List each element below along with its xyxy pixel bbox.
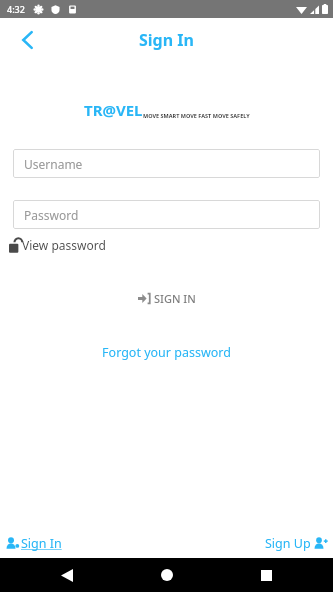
staticText: View password (22, 237, 106, 253)
button[interactable]: Forgot your password (94, 340, 239, 365)
button[interactable]: Recents (251, 560, 281, 590)
staticText: Password (24, 207, 79, 223)
button[interactable]: SIGN IN (128, 287, 206, 310)
button[interactable]: Password (13, 200, 320, 229)
staticText: TR@VEL (84, 100, 143, 120)
button[interactable]: Sign Up (263, 532, 330, 555)
staticText: SIGN IN (154, 291, 196, 306)
button[interactable]: Sign In (3, 532, 64, 555)
button[interactable]: Back (10, 23, 44, 57)
staticText: Sign Up (265, 535, 311, 552)
staticText: Forgot your password (102, 344, 231, 361)
staticText: 4:32 (7, 3, 25, 15)
button[interactable]: Back (52, 560, 82, 590)
button[interactable]: Username (13, 149, 320, 178)
button[interactable]: Home (152, 560, 182, 590)
button[interactable]: View password (9, 237, 106, 253)
staticText: MOVE SMART MOVE FAST MOVE SAFELY (143, 112, 250, 119)
staticText: Sign In (139, 29, 194, 51)
staticText: Sign In (21, 535, 62, 552)
staticText: Username (24, 156, 83, 172)
